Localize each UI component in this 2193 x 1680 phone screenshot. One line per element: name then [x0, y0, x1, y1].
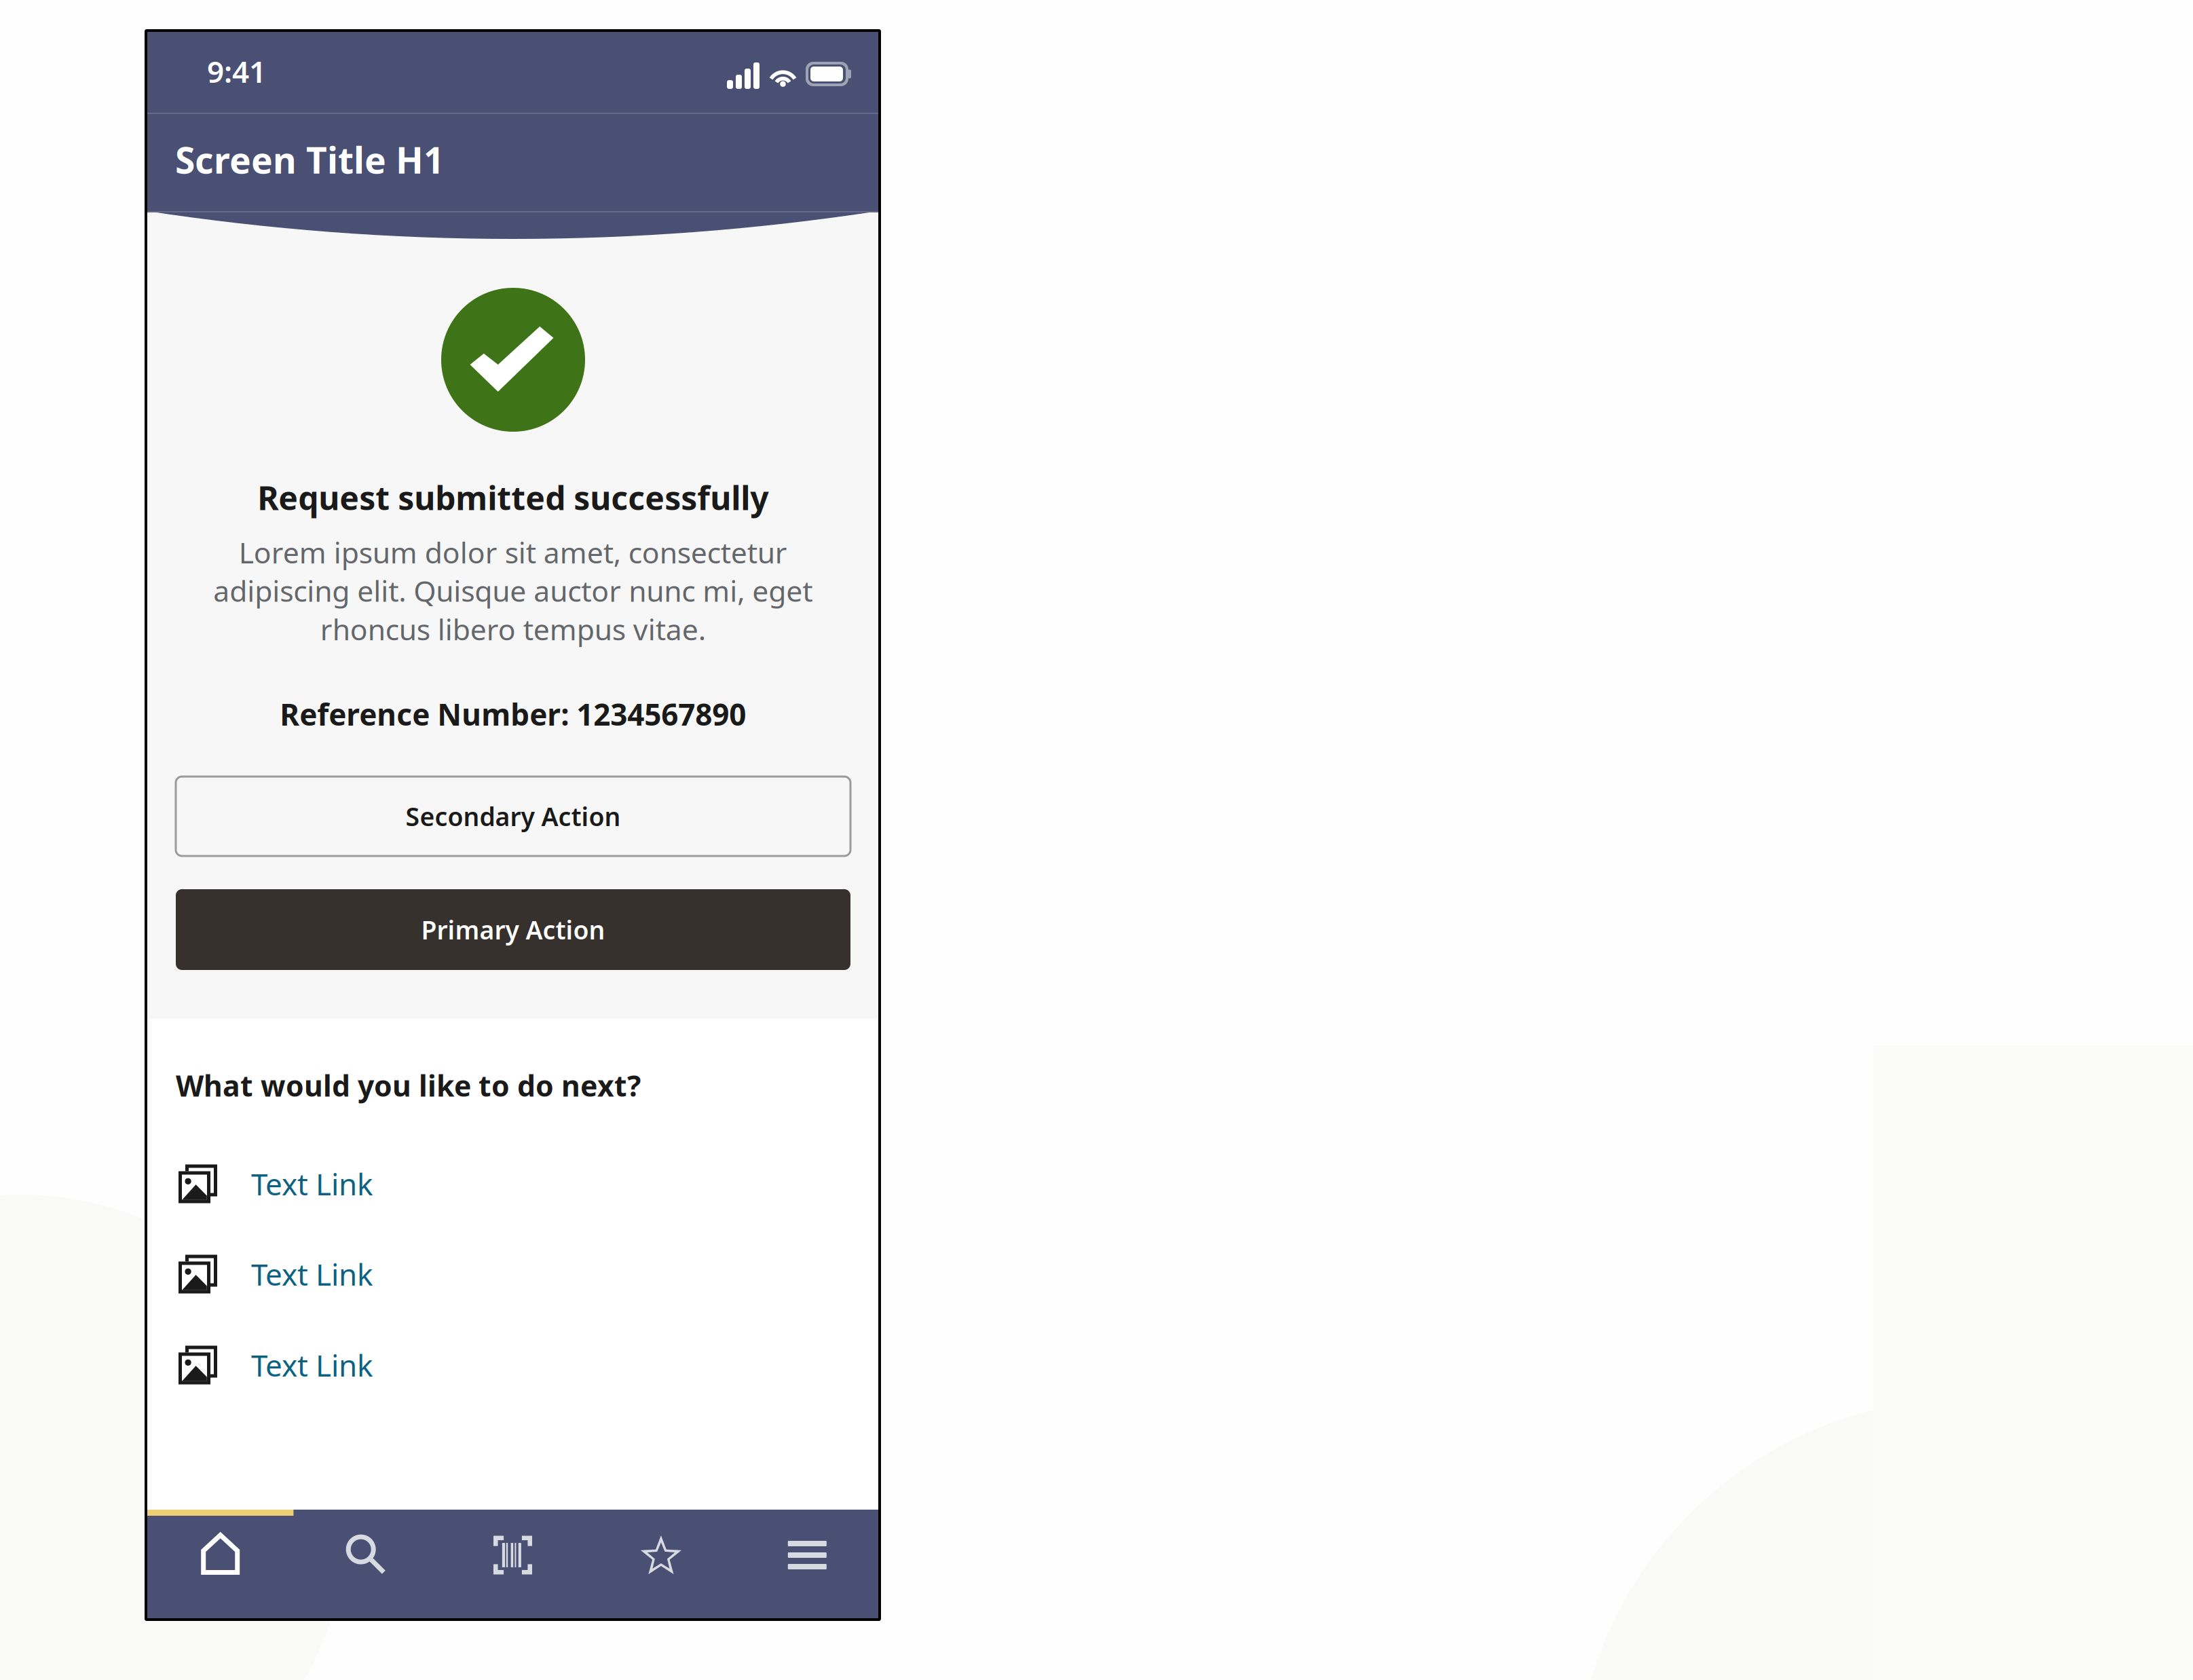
staticText: Screen Title H1: [175, 135, 445, 184]
staticText: Primary Action: [421, 913, 605, 946]
staticText: Request submitted successfully: [257, 476, 768, 519]
button[interactable]: Scan barcode: [440, 1516, 586, 1594]
staticText: Secondary Action: [406, 799, 621, 833]
staticText: Text Link: [251, 1254, 373, 1294]
staticText: 9:41: [207, 51, 266, 91]
button[interactable]: Text Link: [176, 1341, 461, 1389]
staticText: Lorem ipsum dolor sit amet, consectetur …: [213, 533, 812, 648]
staticText: Text Link: [251, 1345, 373, 1385]
button[interactable]: Secondary Action: [176, 777, 850, 856]
button[interactable]: Menu: [732, 1516, 878, 1594]
staticText: What would you like to do next?: [176, 1066, 641, 1105]
button[interactable]: Favourites: [586, 1516, 732, 1594]
staticText: Text Link: [251, 1164, 373, 1204]
button[interactable]: Home: [147, 1516, 293, 1594]
staticText: Reference Number: 1234567890: [280, 694, 746, 734]
button[interactable]: Text Link: [176, 1250, 461, 1299]
button[interactable]: Text Link: [176, 1159, 461, 1208]
button[interactable]: Primary Action: [176, 889, 850, 970]
button[interactable]: Search: [293, 1516, 440, 1594]
